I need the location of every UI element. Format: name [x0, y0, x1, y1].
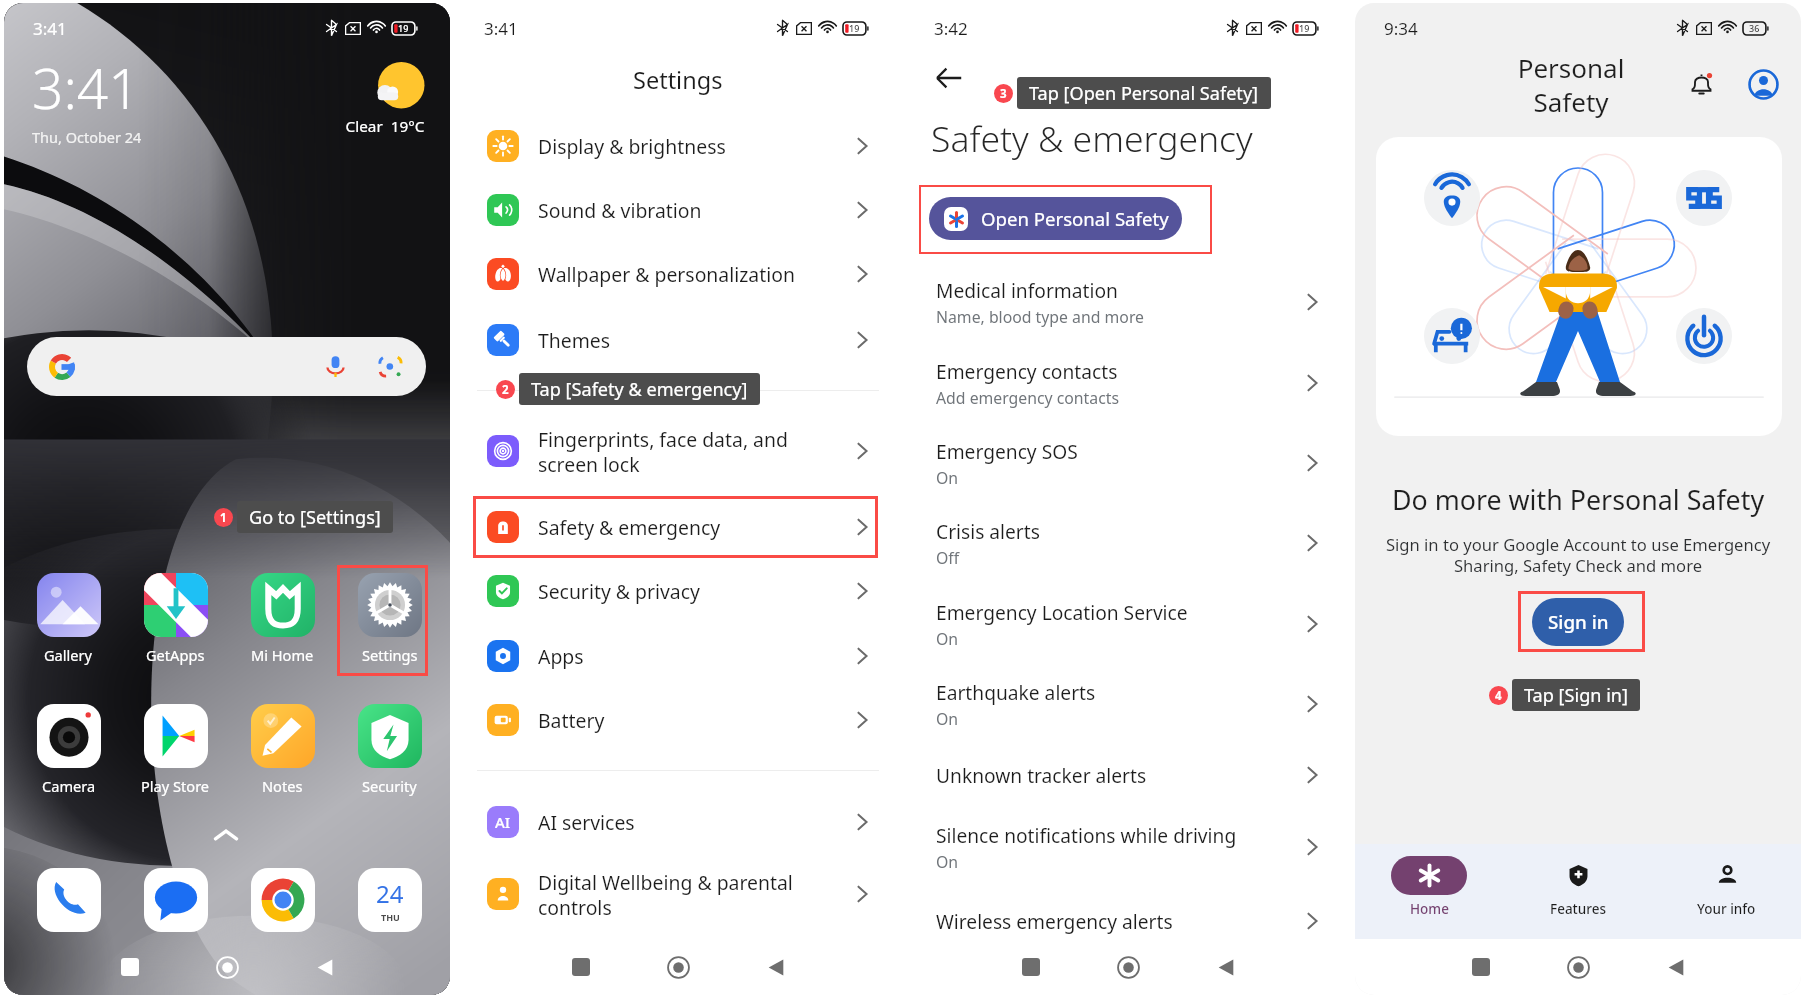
button[interactable]: Apps: [455, 631, 901, 681]
button[interactable]: Wallpaper & personalization: [455, 249, 901, 299]
button[interactable]: Battery: [455, 695, 901, 745]
staticText: Settings: [633, 64, 723, 96]
staticText: Do more with Personal Safety: [1355, 481, 1801, 518]
staticText: Display & brightness: [538, 133, 858, 159]
button[interactable]: AI: [455, 797, 901, 847]
button[interactable]: Mi Home: [229, 573, 336, 665]
button[interactable]: Home: [1556, 945, 1600, 989]
staticText: Security & privacy: [538, 578, 858, 604]
button[interactable]: Silence notifications while driving: [905, 820, 1351, 874]
staticText: Clear 19°C: [335, 116, 435, 137]
staticText: On: [936, 628, 959, 650]
button[interactable]: Your info: [1652, 856, 1801, 918]
staticText: Emergency Location Service: [936, 599, 1188, 625]
staticText: Open Personal Safety: [981, 206, 1169, 231]
staticText: Name, blood type and more: [936, 306, 1144, 328]
button[interactable]: Settings: [336, 573, 443, 665]
staticText: On: [936, 851, 959, 873]
staticText: Personal Safety: [1471, 50, 1671, 119]
staticText: Notes: [262, 776, 303, 796]
staticText: 9:34: [1384, 17, 1418, 40]
staticText: Settings: [362, 645, 418, 665]
button[interactable]: Home: [656, 945, 700, 989]
button[interactable]: Gallery: [15, 573, 122, 665]
staticText: THU: [381, 911, 400, 923]
staticText: Silence notifications while driving: [936, 822, 1237, 848]
staticText: Safety & emergency: [931, 114, 1253, 162]
button[interactable]: Security: [336, 704, 443, 796]
button[interactable]: Home: [1106, 945, 1150, 989]
staticText: Emergency contacts: [936, 358, 1118, 384]
button[interactable]: Emergency SOS: [905, 436, 1351, 490]
staticText: Fingerprints, face data, and screen lock: [538, 426, 858, 477]
button[interactable]: Account: [1741, 62, 1785, 106]
button[interactable]: Recent apps: [1009, 945, 1053, 989]
staticText: 4: [1495, 688, 1502, 704]
button[interactable]: Crisis alerts: [905, 516, 1351, 570]
button[interactable]: Notifications: [1679, 62, 1723, 106]
button[interactable]: Fingerprints, face data, and screen lock: [455, 420, 901, 482]
button[interactable]: Digital Wellbeing & parental controls: [455, 863, 901, 925]
staticText: On: [936, 467, 959, 489]
button[interactable]: GetApps: [122, 573, 229, 665]
button[interactable]: Home: [1355, 856, 1503, 918]
staticText: Unknown tracker alerts: [936, 762, 1147, 788]
button[interactable]: Unknown tracker alerts: [905, 758, 1351, 792]
button[interactable]: Features: [1503, 856, 1652, 918]
button[interactable]: Recent apps: [108, 945, 152, 989]
button[interactable]: Back: [1204, 945, 1248, 989]
button[interactable]: Emergency contacts: [905, 356, 1351, 410]
staticText: 24: [376, 877, 404, 910]
button[interactable]: Notes: [229, 704, 336, 796]
staticText: Off: [936, 547, 960, 569]
button[interactable]: Open Personal Safety: [929, 197, 1182, 240]
button[interactable]: Emergency Location Service: [905, 597, 1351, 651]
button[interactable]: Sound & vibration: [455, 185, 901, 235]
staticText: Safety & emergency: [538, 514, 858, 540]
staticText: GetApps: [146, 645, 205, 665]
staticText: Wireless emergency alerts: [936, 908, 1173, 934]
button[interactable]: Recent apps: [559, 945, 603, 989]
button[interactable]: Security & privacy: [455, 566, 901, 616]
button[interactable]: Themes: [455, 315, 901, 365]
staticText: Mi Home: [251, 645, 314, 665]
button[interactable]: Medical information: [905, 275, 1351, 329]
button[interactable]: Home: [205, 945, 249, 989]
button[interactable]: Safety & emergency: [455, 502, 901, 552]
staticText: 3:42: [934, 17, 968, 40]
staticText: 19: [398, 22, 409, 34]
staticText: 19: [849, 22, 860, 34]
button[interactable]: Phone: [37, 868, 101, 932]
button[interactable]: Back: [303, 945, 347, 989]
staticText: On: [936, 708, 959, 730]
button[interactable]: Wireless emergency alerts: [905, 904, 1351, 938]
staticText: Medical information: [936, 277, 1118, 303]
staticText: Add emergency contacts: [936, 387, 1120, 409]
button[interactable]: Earthquake alerts: [905, 677, 1351, 731]
staticText: 1: [220, 510, 227, 526]
staticText: 2: [502, 382, 509, 398]
staticText: Tap [Open Personal Safety]: [1029, 81, 1259, 106]
button[interactable]: Display & brightness: [455, 121, 901, 171]
button[interactable]: Camera: [15, 704, 122, 796]
staticText: Your info: [1697, 900, 1756, 918]
staticText: Thu, October 24: [32, 127, 142, 147]
staticText: Themes: [538, 327, 858, 353]
button[interactable]: Back: [1654, 945, 1698, 989]
button[interactable]: Recent apps: [1459, 945, 1503, 989]
button[interactable]: Calendar: [358, 868, 422, 932]
staticText: 3:41: [32, 50, 140, 125]
staticText: 3: [1000, 86, 1007, 102]
button[interactable]: Play Store: [122, 704, 229, 796]
staticText: Earthquake alerts: [936, 679, 1096, 705]
button[interactable]: Messages: [144, 868, 208, 932]
staticText: Camera: [42, 776, 96, 796]
staticText: 3:41: [484, 17, 518, 40]
button[interactable]: Back: [929, 58, 969, 98]
button[interactable]: Back: [754, 945, 798, 989]
staticText: Security: [362, 776, 417, 796]
button[interactable]: Sign in: [1532, 598, 1624, 646]
button[interactable]: [27, 337, 426, 396]
staticText: Digital Wellbeing & parental controls: [538, 869, 858, 920]
button[interactable]: Chrome: [251, 868, 315, 932]
